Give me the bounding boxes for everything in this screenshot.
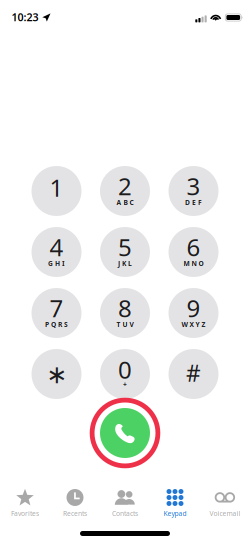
button[interactable]: Keypad bbox=[150, 481, 200, 526]
staticText: Recents bbox=[63, 509, 87, 518]
staticText: 4 bbox=[49, 231, 63, 263]
staticText: A B C bbox=[116, 198, 133, 207]
button[interactable]: 4 bbox=[31, 227, 81, 277]
staticText: # bbox=[186, 358, 201, 388]
button[interactable]: 1 bbox=[31, 166, 81, 216]
staticText: D E F bbox=[185, 198, 202, 207]
button[interactable]: 9 bbox=[168, 288, 218, 338]
staticText: + bbox=[123, 380, 127, 389]
button[interactable]: 0 bbox=[100, 349, 150, 399]
staticText: M N O bbox=[183, 259, 203, 268]
staticText: 1 bbox=[49, 171, 63, 203]
button[interactable]: 7 bbox=[31, 288, 81, 338]
button[interactable]: 8 bbox=[100, 288, 150, 338]
staticText: 9 bbox=[186, 292, 200, 324]
staticText: T U V bbox=[116, 320, 133, 329]
staticText: Contacts bbox=[112, 509, 138, 518]
button[interactable]: 5 bbox=[100, 227, 150, 277]
button[interactable]: 2 bbox=[100, 166, 150, 216]
staticText: J K L bbox=[118, 259, 132, 268]
button[interactable]: 6 bbox=[168, 227, 218, 277]
button[interactable]: Call bbox=[89, 397, 160, 468]
button[interactable]: ∗ bbox=[31, 349, 81, 399]
staticText: 0 bbox=[118, 353, 132, 385]
staticText: P Q R S bbox=[45, 320, 68, 329]
staticText: 8 bbox=[118, 292, 132, 324]
button[interactable]: Favorites bbox=[0, 481, 50, 526]
button[interactable]: # bbox=[168, 349, 218, 399]
staticText: Voicemail bbox=[209, 509, 240, 518]
staticText: W X Y Z bbox=[181, 320, 205, 329]
staticText: 2 bbox=[118, 170, 132, 202]
staticText: G H I bbox=[48, 259, 65, 268]
staticText: 10:23 bbox=[11, 10, 38, 24]
staticText: Favorites bbox=[11, 509, 39, 518]
button[interactable]: Contacts bbox=[100, 481, 150, 526]
button[interactable]: 3 bbox=[168, 166, 218, 216]
staticText: 5 bbox=[118, 231, 132, 263]
staticText: ∗ bbox=[46, 360, 67, 389]
button[interactable]: Recents bbox=[50, 481, 100, 526]
staticText: 3 bbox=[186, 170, 200, 202]
staticText: Keypad bbox=[163, 509, 186, 518]
button[interactable]: Voicemail bbox=[200, 481, 250, 526]
staticText: 7 bbox=[49, 292, 63, 324]
staticText: 6 bbox=[186, 231, 200, 263]
